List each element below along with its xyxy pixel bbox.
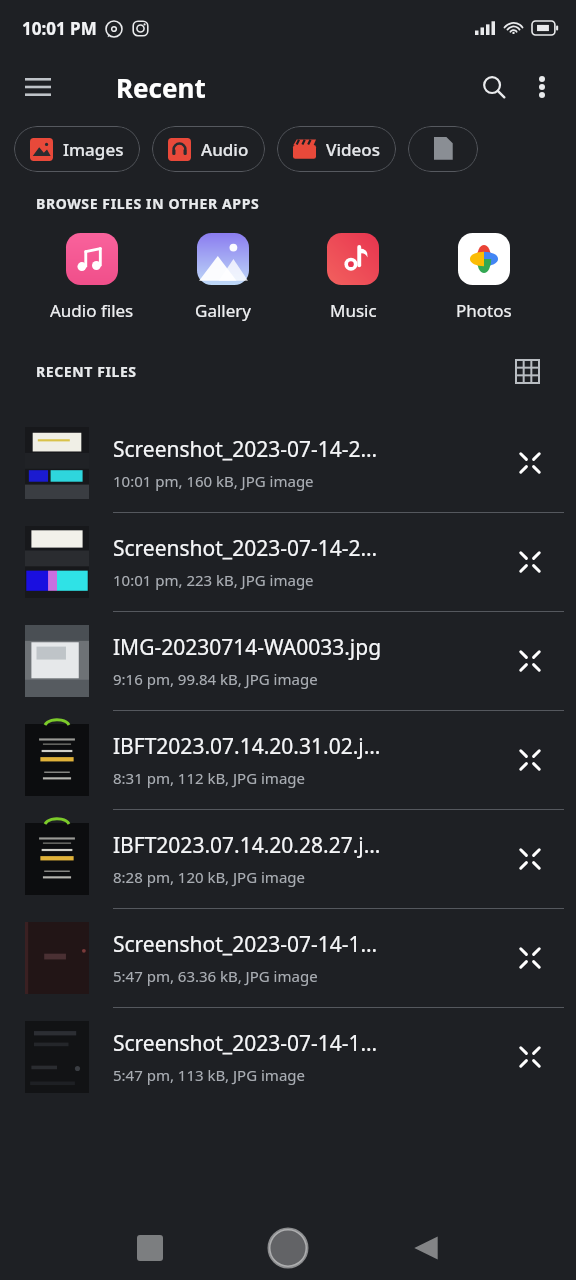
button[interactable]: Expand bbox=[504, 437, 556, 489]
staticText: IBFT2023.07.14.20.31.02.j… bbox=[113, 732, 381, 761]
staticText: IBFT2023.07.14.20.28.27.j… bbox=[113, 831, 381, 860]
button[interactable]: IBFT2023.07.14.20.31.02.j… bbox=[0, 711, 576, 810]
button[interactable]: Screenshot_2023-07-14-2… bbox=[0, 513, 576, 612]
staticText: Screenshot_2023-07-14-1… bbox=[113, 1029, 378, 1058]
button[interactable]: Gallery bbox=[168, 231, 278, 324]
button[interactable]: Images bbox=[14, 126, 140, 172]
button[interactable]: Expand bbox=[504, 734, 556, 786]
staticText: Screenshot_2023-07-14-2… bbox=[113, 534, 378, 563]
button[interactable]: Audio files bbox=[37, 231, 147, 324]
staticText: Music bbox=[330, 299, 377, 322]
staticText: 10:01 PM bbox=[22, 17, 97, 40]
staticText: 8:28 pm, 120 kB, JPG image bbox=[113, 867, 305, 887]
button[interactable]: Music bbox=[298, 231, 408, 324]
staticText: Audio bbox=[201, 138, 249, 161]
button[interactable]: Open navigation drawer bbox=[14, 63, 62, 111]
staticText: Audio files bbox=[50, 299, 134, 322]
button[interactable]: Videos bbox=[277, 126, 396, 172]
button[interactable]: IMG-20230714-WA0033.jpg bbox=[0, 612, 576, 711]
button[interactable]: Expand bbox=[504, 833, 556, 885]
button[interactable]: Screenshot_2023-07-14-1… bbox=[0, 909, 576, 1008]
button[interactable]: Expand bbox=[504, 536, 556, 588]
button[interactable]: Switch to grid view bbox=[506, 350, 548, 392]
button[interactable]: Photos bbox=[429, 231, 539, 324]
button[interactable]: Expand bbox=[504, 1031, 556, 1083]
staticText: 10:01 pm, 223 kB, JPG image bbox=[113, 570, 314, 590]
staticText: BROWSE FILES IN OTHER APPS bbox=[36, 194, 260, 213]
button[interactable]: Recent apps bbox=[130, 1228, 170, 1268]
staticText: Photos bbox=[456, 299, 512, 322]
staticText: RECENT FILES bbox=[36, 362, 137, 381]
button[interactable]: More options bbox=[518, 63, 566, 111]
staticText: Screenshot_2023-07-14-1… bbox=[113, 930, 378, 959]
staticText: 9:16 pm, 99.84 kB, JPG image bbox=[113, 669, 318, 689]
staticText: Screenshot_2023-07-14-2… bbox=[113, 435, 378, 464]
staticText: Videos bbox=[326, 138, 380, 161]
button[interactable]: Audio bbox=[152, 126, 265, 172]
button[interactable]: Expand bbox=[504, 932, 556, 984]
button[interactable]: Expand bbox=[504, 635, 556, 687]
button[interactable]: Screenshot_2023-07-14-1… bbox=[0, 1008, 576, 1106]
button[interactable]: Screenshot_2023-07-14-2… bbox=[0, 414, 576, 513]
button[interactable]: Documents bbox=[408, 126, 478, 172]
button[interactable]: IBFT2023.07.14.20.28.27.j… bbox=[0, 810, 576, 909]
staticText: 8:31 pm, 112 kB, JPG image bbox=[113, 768, 305, 788]
staticText: IMG-20230714-WA0033.jpg bbox=[113, 633, 382, 662]
staticText: 10:01 pm, 160 kB, JPG image bbox=[113, 471, 314, 491]
staticText: 5:47 pm, 113 kB, JPG image bbox=[113, 1065, 305, 1085]
staticText: Recent bbox=[116, 70, 206, 105]
staticText: Images bbox=[63, 138, 124, 161]
staticText: Gallery bbox=[195, 299, 251, 322]
staticText: 5:47 pm, 63.36 kB, JPG image bbox=[113, 966, 318, 986]
button[interactable]: Back bbox=[406, 1228, 446, 1268]
button[interactable]: Search bbox=[470, 63, 518, 111]
button[interactable]: Home bbox=[264, 1224, 312, 1272]
